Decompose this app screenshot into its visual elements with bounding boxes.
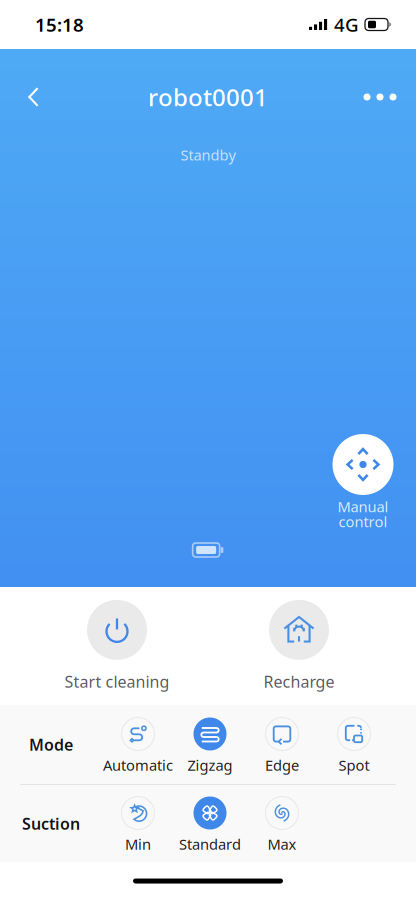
button[interactable]: Standard: [174, 796, 246, 851]
staticText: 15:18: [35, 12, 84, 37]
button[interactable]: Min: [102, 796, 174, 851]
button[interactable]: Back: [12, 75, 56, 119]
button[interactable]: Spot: [318, 717, 390, 772]
button[interactable]: Edge: [246, 717, 318, 772]
staticText: Automatic: [103, 755, 173, 775]
button[interactable]: Manual: [318, 434, 408, 529]
button[interactable]: Zigzag: [174, 717, 246, 772]
staticText: Zigzag: [187, 755, 232, 775]
staticText: Standby: [180, 145, 235, 164]
staticText: Recharge: [263, 671, 334, 692]
staticText: Min: [125, 834, 151, 854]
staticText: Suction: [22, 813, 80, 834]
staticText: Standard: [179, 834, 241, 854]
staticText: 4G: [334, 12, 359, 37]
button[interactable]: Automatic: [102, 717, 174, 772]
button[interactable]: Recharge: [208, 600, 390, 692]
staticText: Start cleaning: [64, 671, 169, 692]
button[interactable]: Start cleaning: [26, 600, 208, 692]
staticText: control: [338, 512, 387, 531]
staticText: Mode: [29, 734, 73, 755]
staticText: Spot: [338, 755, 369, 775]
staticText: Manual: [337, 497, 388, 516]
button[interactable]: Max: [246, 796, 318, 851]
staticText: robot0001: [148, 81, 268, 113]
staticText: Max: [267, 834, 296, 854]
staticText: Edge: [265, 755, 299, 775]
button[interactable]: More options: [358, 75, 402, 119]
